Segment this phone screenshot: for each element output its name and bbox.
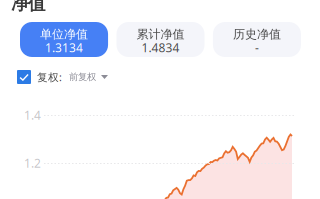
- staticText: 复权:: [37, 70, 62, 84]
- staticText: 1.4834: [141, 40, 179, 56]
- button[interactable]: 单位净值: [20, 22, 108, 57]
- staticText: 累计净值: [136, 27, 184, 42]
- staticText: 净值: [11, 0, 45, 14]
- staticText: -: [255, 40, 259, 56]
- staticText: 单位净值: [40, 27, 88, 42]
- button[interactable]: 前复权: [69, 71, 108, 83]
- staticText: 前复权: [69, 71, 96, 83]
- staticText: 1.2: [24, 155, 41, 171]
- staticText: 1.3134: [45, 40, 83, 56]
- button[interactable]: 累计净值: [116, 22, 205, 57]
- button[interactable]: 历史净值: [213, 22, 301, 57]
- button[interactable]: 复权: [17, 70, 31, 84]
- staticText: 1.4: [24, 107, 41, 123]
- staticText: 历史净值: [233, 27, 281, 42]
